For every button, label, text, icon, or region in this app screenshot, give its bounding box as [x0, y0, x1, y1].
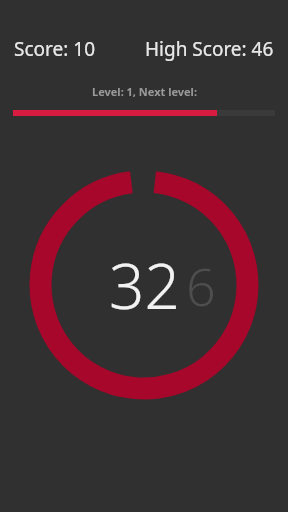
staticText: Level: 1, Next level:: [92, 84, 197, 99]
button[interactable]: Timer ring: [18, 159, 270, 411]
staticText: 32: [109, 243, 180, 327]
staticText: Score: 10: [14, 36, 95, 62]
button[interactable]: High Score: 46: [144, 36, 274, 62]
staticText: 6: [186, 250, 216, 321]
button[interactable]: Score: 10: [14, 36, 144, 62]
staticText: High Score: 46: [145, 36, 274, 62]
